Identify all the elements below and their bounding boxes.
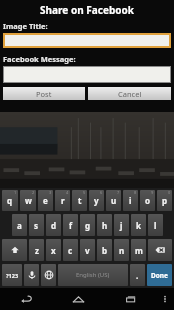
staticText: x xyxy=(51,245,56,256)
button[interactable]: x xyxy=(46,239,61,261)
staticText: Done xyxy=(151,271,168,280)
staticText: l xyxy=(154,220,157,231)
button[interactable]: s xyxy=(29,214,44,236)
staticText: English (US) xyxy=(76,271,110,279)
button[interactable]: r xyxy=(55,190,70,211)
staticText: f xyxy=(69,220,73,231)
staticText: y xyxy=(94,195,99,206)
staticText: k xyxy=(136,220,141,231)
button[interactable]: h xyxy=(97,214,112,236)
button[interactable]: Shift xyxy=(2,239,27,261)
button[interactable]: Post xyxy=(3,87,85,100)
button[interactable]: More options xyxy=(156,288,174,310)
staticText: 5 xyxy=(83,190,86,195)
staticText: p xyxy=(162,195,168,206)
button[interactable]: a xyxy=(12,214,27,236)
staticText: 0 xyxy=(168,190,171,195)
button[interactable]: w xyxy=(20,190,36,211)
staticText: m xyxy=(135,245,143,256)
staticText: v xyxy=(85,245,90,256)
staticText: h xyxy=(102,220,108,231)
staticText: a xyxy=(17,220,22,231)
staticText: 9 xyxy=(151,190,154,195)
button[interactable]: q xyxy=(2,190,18,211)
staticText: j xyxy=(120,220,123,231)
button[interactable]: t xyxy=(72,190,87,211)
button[interactable]: m xyxy=(131,239,146,261)
staticText: Share on Facebook xyxy=(3,3,171,17)
staticText: q xyxy=(7,195,13,206)
button[interactable]: Change language xyxy=(41,264,56,286)
staticText: Image Title: xyxy=(3,21,48,31)
staticText: g xyxy=(85,220,91,231)
button[interactable]: English (US) xyxy=(58,264,128,286)
button[interactable]: z xyxy=(29,239,44,261)
button[interactable]: f xyxy=(63,214,78,236)
staticText: t xyxy=(78,195,82,206)
button[interactable]: i xyxy=(123,190,138,211)
staticText: 7 xyxy=(117,190,120,195)
button[interactable]: Cancel xyxy=(88,87,171,100)
staticText: e xyxy=(43,195,48,206)
button[interactable]: Recent apps xyxy=(104,288,156,310)
button[interactable]: . xyxy=(130,264,145,286)
staticText: b xyxy=(102,245,108,256)
staticText: 3 xyxy=(49,190,52,195)
staticText: Cancel xyxy=(118,89,142,99)
staticText: i xyxy=(129,195,132,206)
button[interactable]: u xyxy=(106,190,121,211)
button[interactable]: v xyxy=(80,239,95,261)
button[interactable]: k xyxy=(131,214,146,236)
button[interactable]: b xyxy=(97,239,112,261)
staticText: 6 xyxy=(100,190,103,195)
staticText: w xyxy=(25,195,32,206)
staticText: z xyxy=(35,245,39,256)
staticText: ?123 xyxy=(6,272,19,279)
staticText: u xyxy=(111,195,117,206)
button[interactable]: Backspace xyxy=(148,239,172,261)
button[interactable]: e xyxy=(38,190,53,211)
button[interactable]: l xyxy=(148,214,163,236)
staticText: s xyxy=(34,220,39,231)
button[interactable]: Done xyxy=(147,264,172,286)
button[interactable]: o xyxy=(140,190,155,211)
button[interactable]: Back xyxy=(0,288,52,310)
button[interactable]: j xyxy=(114,214,129,236)
button[interactable]: Voice input xyxy=(24,264,39,286)
staticText: d xyxy=(51,220,57,231)
staticText: Post xyxy=(36,89,52,99)
staticText: 1 xyxy=(14,190,17,195)
staticText: c xyxy=(68,245,73,256)
staticText: . xyxy=(136,270,139,281)
staticText: o xyxy=(145,195,150,206)
button[interactable]: Home xyxy=(52,288,104,310)
button[interactable]: g xyxy=(80,214,95,236)
button[interactable]: n xyxy=(114,239,129,261)
button[interactable]: p xyxy=(157,190,172,211)
staticText: n xyxy=(119,245,125,256)
button[interactable]: ?123 xyxy=(2,264,22,286)
staticText: r xyxy=(61,195,65,206)
staticText: Facebook Message: xyxy=(3,54,76,64)
button[interactable]: c xyxy=(63,239,78,261)
button[interactable]: d xyxy=(46,214,61,236)
button[interactable]: y xyxy=(89,190,104,211)
staticText: 2 xyxy=(32,190,35,195)
staticText: 8 xyxy=(134,190,137,195)
staticText: 4 xyxy=(66,190,69,195)
